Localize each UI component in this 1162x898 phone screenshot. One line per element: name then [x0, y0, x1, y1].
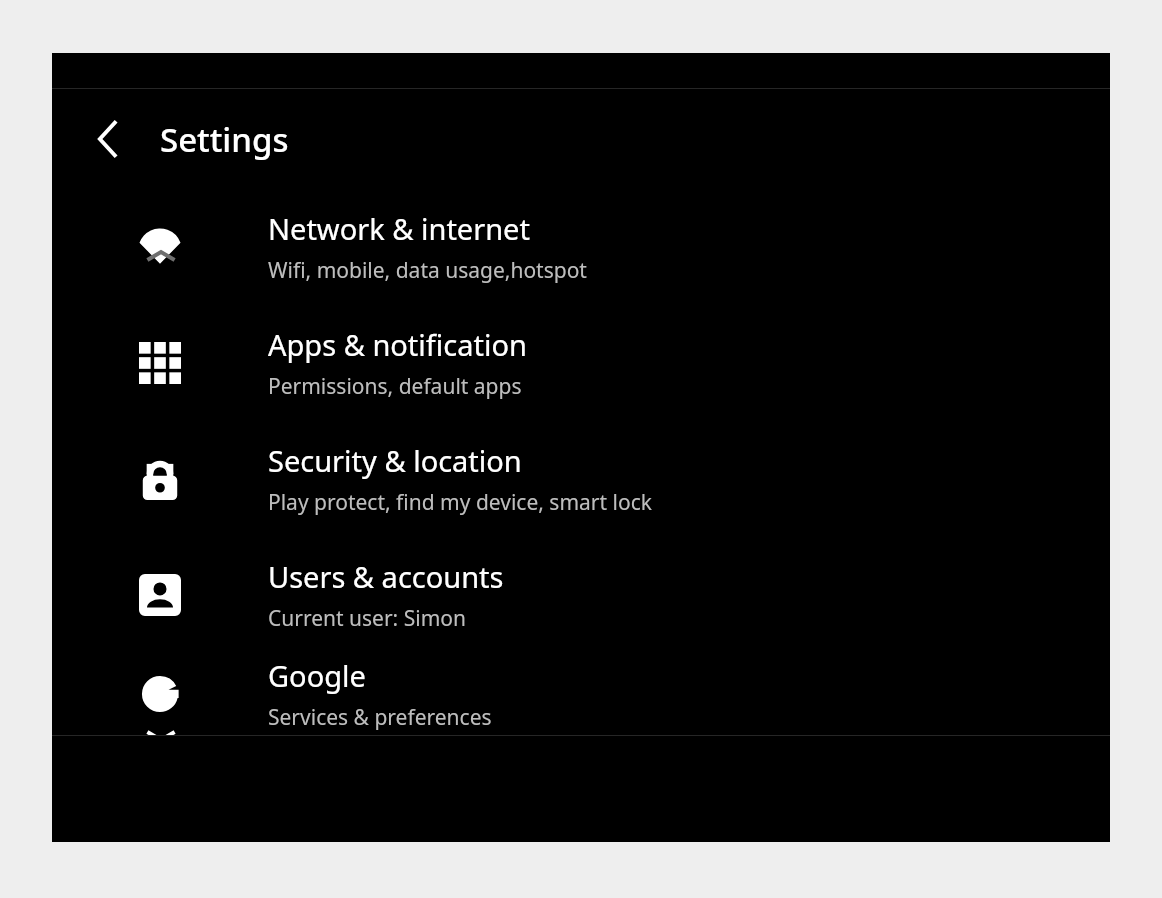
staticText: Network & internet	[268, 209, 530, 248]
staticText: Settings	[160, 117, 289, 162]
staticText: Apps & notification	[268, 325, 527, 364]
button[interactable]: Security & location	[52, 421, 1110, 537]
staticText: Google	[268, 656, 366, 695]
staticText: Security & location	[268, 441, 522, 480]
staticText: Wifi, mobile, data usage,hotspot	[268, 256, 587, 285]
staticText: Users & accounts	[268, 557, 504, 596]
staticText: Permissions, default apps	[268, 372, 522, 401]
button[interactable]: Scroll up	[140, 241, 182, 271]
button[interactable]: Google	[52, 653, 1110, 735]
staticText: Current user: Simon	[268, 604, 466, 633]
button[interactable]: Apps & notification	[52, 305, 1110, 421]
button[interactable]: Network & internet	[52, 189, 1110, 305]
staticText: Play protect, find my device, smart lock	[268, 488, 652, 517]
button[interactable]: Back	[52, 89, 160, 189]
button[interactable]: Users & accounts	[52, 537, 1110, 653]
button[interactable]: Scroll down	[140, 721, 182, 735]
staticText: Services & preferences	[268, 703, 492, 732]
